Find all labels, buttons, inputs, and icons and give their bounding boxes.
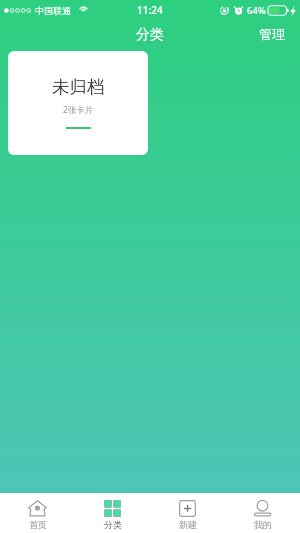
staticText: 未归档 <box>52 76 105 98</box>
staticText: 新建 <box>179 519 197 530</box>
button[interactable]: 管理 <box>246 20 300 48</box>
staticText: 中国联通 <box>35 5 71 16</box>
staticText: 管理 <box>259 26 285 42</box>
staticText: 首页 <box>29 519 47 530</box>
button[interactable]: Profile <box>225 493 300 533</box>
other: New <box>179 500 196 517</box>
button[interactable]: Categories <box>75 493 150 533</box>
staticText: 我的 <box>254 519 272 530</box>
staticText: 分类 <box>104 519 122 530</box>
staticText: 2张卡片 <box>63 104 94 116</box>
staticText: 11:24 <box>137 3 163 17</box>
staticText: 64% <box>247 4 266 17</box>
other: Home <box>28 500 47 517</box>
staticText: 分类 <box>136 26 164 44</box>
button[interactable]: New <box>150 493 225 533</box>
other: Profile <box>254 500 271 517</box>
button[interactable]: 未归档 <box>8 51 148 155</box>
other: Categories <box>104 500 121 517</box>
button[interactable]: Home <box>0 493 75 533</box>
